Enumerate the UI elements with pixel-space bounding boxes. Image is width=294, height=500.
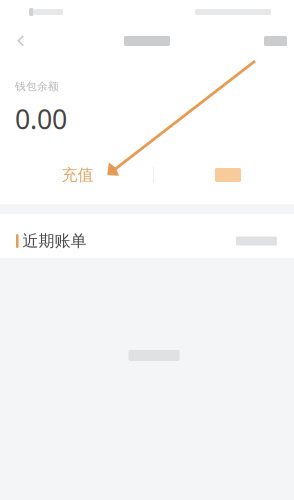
- staticText: 0.00: [15, 101, 67, 136]
- button[interactable]: 充值: [0, 154, 150, 196]
- button[interactable]: 返回: [3, 23, 39, 59]
- button[interactable]: 查看全部: [219, 231, 277, 251]
- staticText: 近期账单: [22, 231, 86, 251]
- button[interactable]: 提现: [150, 154, 294, 196]
- staticText: 钱包余额: [15, 80, 59, 93]
- staticText: 充值: [61, 165, 93, 185]
- button[interactable]: 更多: [257, 23, 294, 59]
